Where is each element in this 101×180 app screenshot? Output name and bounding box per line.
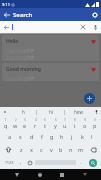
- button[interactable]: Voice input: [0, 107, 10, 117]
- button[interactable]: 9: [80, 117, 90, 130]
- staticText: how: [74, 109, 83, 115]
- button[interactable]: x: [26, 143, 36, 156]
- button[interactable]: Add note: [84, 93, 95, 104]
- button[interactable]: z: [16, 143, 26, 156]
- button[interactable]: g: [47, 130, 57, 143]
- button[interactable]: ?123: [1, 156, 17, 169]
- button[interactable]: 2: [10, 117, 20, 130]
- staticText: o: [83, 122, 87, 129]
- button[interactable]: Emoji: [25, 156, 34, 169]
- button[interactable]: Shift: [1, 143, 16, 156]
- staticText: x: [30, 146, 33, 153]
- staticText: 5: [44, 118, 46, 122]
- button[interactable]: b: [56, 143, 66, 156]
- button[interactable]: h: [10, 107, 36, 117]
- staticText: 7: [64, 118, 66, 122]
- button[interactable]: ,: [17, 156, 25, 169]
- staticText: こんにちは世界: [6, 48, 35, 53]
- button[interactable]: Favorite: [90, 66, 96, 72]
- button[interactable]: 1: [1, 117, 10, 130]
- staticText: p: [93, 122, 97, 129]
- staticText: s: [19, 133, 22, 140]
- staticText: ,: [20, 159, 22, 166]
- button[interactable]: Back: [11, 169, 22, 180]
- button[interactable]: .: [77, 156, 85, 169]
- staticText: w: [13, 122, 18, 129]
- staticText: Hello: [6, 38, 19, 45]
- button[interactable]: Recents: [56, 169, 67, 180]
- staticText: r: [34, 122, 37, 129]
- staticText: q: [4, 122, 8, 129]
- staticText: k: [81, 133, 84, 140]
- staticText: 8: [74, 118, 76, 122]
- button[interactable]: 6: [50, 117, 60, 130]
- button[interactable]: c: [36, 143, 46, 156]
- button[interactable]: 8: [70, 117, 80, 130]
- button[interactable]: l: [87, 130, 97, 143]
- staticText: h: [22, 109, 25, 115]
- staticText: c: [40, 146, 43, 153]
- button[interactable]: m: [76, 143, 86, 156]
- staticText: 9:11: [2, 2, 10, 7]
- staticText: 9: [84, 118, 86, 122]
- button[interactable]: Favorite: [90, 38, 96, 44]
- staticText: Search: [13, 11, 33, 19]
- button[interactable]: hi: [37, 107, 64, 117]
- button[interactable]: j: [67, 130, 77, 143]
- button[interactable]: s: [15, 130, 26, 143]
- button[interactable]: d: [26, 130, 37, 143]
- button[interactable]: f: [37, 130, 47, 143]
- staticText: hi: [49, 109, 53, 115]
- staticText: g: [50, 133, 54, 140]
- button[interactable]: Clear: [77, 21, 89, 33]
- button[interactable]: Hello: [2, 35, 99, 61]
- staticText: f: [41, 133, 43, 140]
- staticText: j: [71, 133, 73, 140]
- button[interactable]: Search: [85, 156, 100, 169]
- staticText: ?123: [5, 160, 14, 165]
- staticText: 1: [5, 118, 7, 122]
- button[interactable]: Back: [0, 21, 12, 33]
- staticText: a: [8, 133, 12, 140]
- button[interactable]: n: [66, 143, 76, 156]
- button[interactable]: 5: [40, 117, 50, 130]
- button[interactable]: a: [4, 130, 15, 143]
- staticText: t: [44, 122, 46, 129]
- button[interactable]: More suggestions: [92, 107, 101, 117]
- button[interactable]: Good morning: [2, 63, 99, 81]
- button[interactable]: 4: [30, 117, 40, 130]
- staticText: n: [69, 146, 73, 153]
- button[interactable]: v: [46, 143, 56, 156]
- button[interactable]: Home: [34, 169, 45, 180]
- staticText: y: [54, 122, 57, 129]
- button[interactable]: h: [57, 130, 67, 143]
- button[interactable]: Delete: [86, 143, 100, 156]
- staticText: m: [78, 146, 84, 153]
- button[interactable]: 7: [60, 117, 70, 130]
- staticText: e: [23, 122, 27, 129]
- staticText: h: [60, 133, 64, 140]
- staticText: 2: [15, 118, 17, 122]
- staticText: .: [80, 159, 82, 166]
- staticText: z: [20, 146, 23, 153]
- button[interactable]: Voice search: [89, 21, 101, 33]
- button[interactable]: how: [65, 107, 92, 117]
- staticText: こんにちは世界: [6, 76, 35, 81]
- staticText: i: [74, 122, 76, 129]
- button[interactable]: 0: [90, 117, 100, 130]
- staticText: d: [30, 133, 34, 140]
- staticText: 4: [35, 118, 37, 122]
- button[interactable]: 3: [20, 117, 30, 130]
- staticText: 0: [94, 118, 96, 122]
- staticText: u: [63, 122, 67, 129]
- button[interactable]: k: [77, 130, 87, 143]
- button[interactable]: Hide keyboard: [79, 169, 90, 180]
- staticText: l: [91, 133, 93, 140]
- button[interactable]: Settings: [88, 8, 101, 21]
- staticText: こんにちは世界: [6, 55, 35, 60]
- staticText: Good morning: [6, 66, 41, 73]
- button[interactable]: Back: [0, 8, 13, 21]
- staticText: 6: [55, 118, 57, 122]
- staticText: b: [59, 146, 63, 153]
